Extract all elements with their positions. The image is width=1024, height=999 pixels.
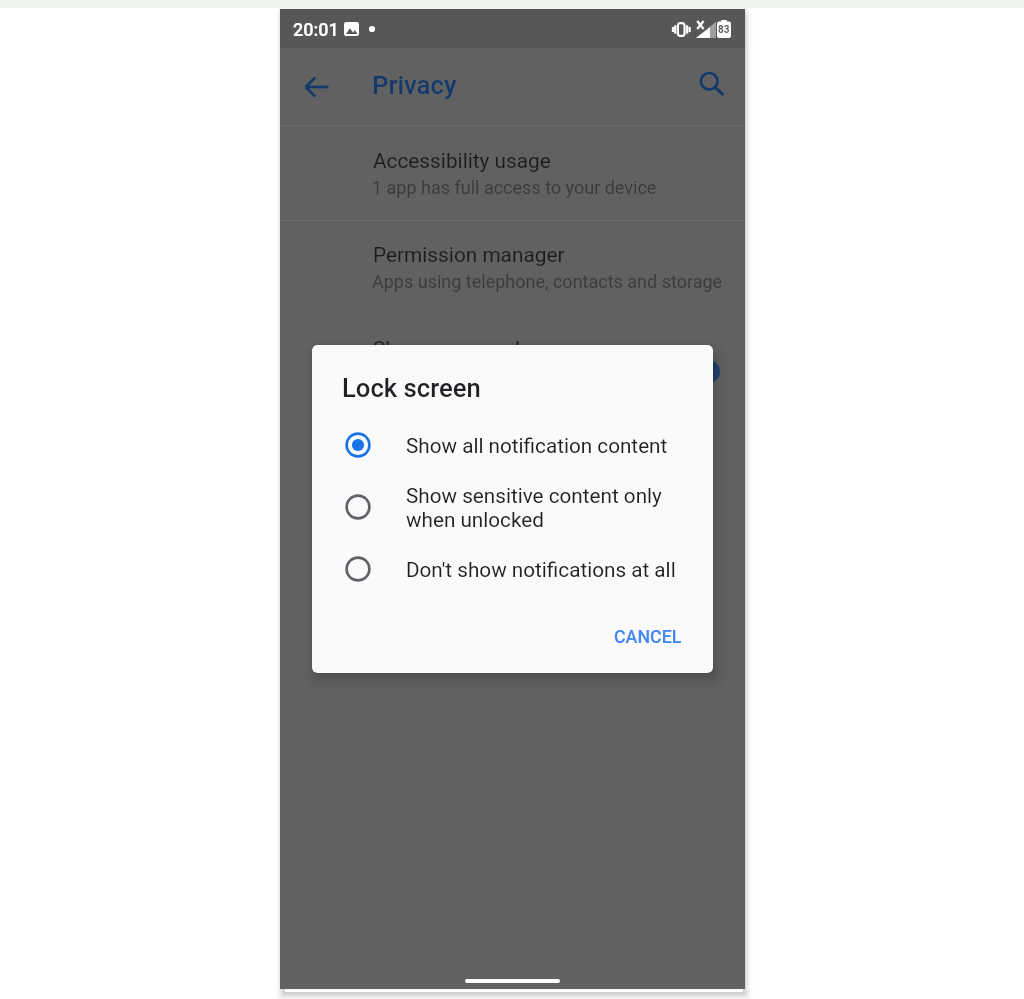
staticText: Privacy (372, 70, 457, 100)
staticText: Show passwords (373, 337, 531, 361)
staticText: Show all notification content (406, 434, 668, 458)
button[interactable]: Search (686, 59, 735, 108)
button[interactable]: Lock screen (280, 408, 745, 502)
button[interactable]: Show all notification content (312, 419, 713, 471)
button[interactable]: Accessibility usage (280, 126, 745, 220)
button[interactable]: Show passwords (280, 314, 745, 408)
button[interactable]: Show passwords (663, 337, 725, 385)
staticText: Apps using telephone, contacts and stora… (372, 271, 723, 292)
button[interactable]: Permission manager (280, 220, 745, 314)
button[interactable]: CANCEL (602, 618, 694, 655)
button[interactable]: Navigate up (292, 62, 341, 111)
staticText: when unlocked (406, 508, 544, 532)
staticText: Autofill service from Google (373, 525, 630, 549)
staticText: Don't show notifications at all (406, 558, 676, 582)
button[interactable]: Don't show notifications at all (312, 543, 713, 595)
staticText: Permission manager (373, 243, 565, 267)
staticText: 20:01 (293, 19, 339, 40)
staticText: Show sensitive content only (406, 484, 662, 508)
button[interactable]: Autofill service from Google (280, 502, 745, 596)
staticText: CANCEL (614, 626, 682, 647)
button[interactable]: Show sensitive content only (312, 481, 713, 533)
staticText: 1 app has full access to your device (372, 177, 657, 198)
staticText: 83 (718, 24, 730, 36)
staticText: Passwords, payment methods, addresses (372, 553, 705, 574)
staticText: Display characters briefly as you type (372, 365, 668, 386)
staticText: Accessibility usage (373, 149, 551, 173)
staticText: Lock screen (373, 431, 485, 455)
staticText: Lock screen (342, 373, 481, 403)
